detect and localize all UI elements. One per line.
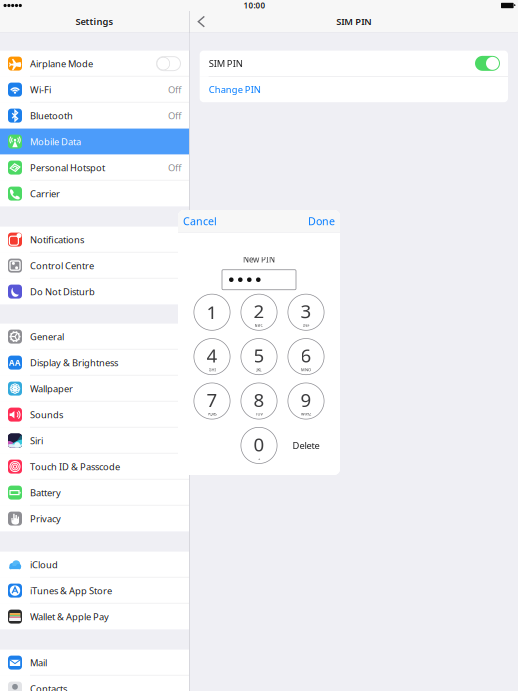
button[interactable]: Cancel bbox=[178, 209, 222, 233]
staticText: Off bbox=[168, 161, 181, 174]
button[interactable]: Change PIN bbox=[200, 77, 508, 102]
button[interactable]: Wallpaper bbox=[0, 376, 189, 402]
button[interactable]: Control Centre bbox=[0, 253, 189, 279]
staticText: New PIN bbox=[243, 254, 275, 265]
staticText: Carrier bbox=[30, 187, 60, 200]
staticText: Off bbox=[168, 109, 181, 122]
button[interactable]: Notifications bbox=[0, 227, 189, 253]
staticText: Bluetooth bbox=[30, 109, 73, 122]
staticText: Sounds bbox=[30, 408, 63, 421]
staticText: AA bbox=[9, 357, 21, 368]
button[interactable]: iTunes & App Store bbox=[0, 578, 189, 604]
staticText: Done bbox=[308, 214, 335, 228]
staticText: iTunes & App Store bbox=[30, 584, 112, 597]
staticText: Mail bbox=[30, 656, 47, 669]
button[interactable]: Contacts bbox=[0, 676, 189, 691]
button[interactable]: 0 bbox=[240, 427, 277, 464]
button[interactable]: 2 bbox=[240, 294, 277, 331]
staticText: Change PIN bbox=[209, 83, 261, 96]
staticText: Wallpaper bbox=[30, 382, 73, 395]
button[interactable]: Privacy bbox=[0, 506, 189, 532]
staticText: SIM PIN bbox=[209, 57, 243, 70]
staticText: JKL bbox=[256, 367, 261, 372]
button[interactable]: SIM PIN bbox=[200, 51, 508, 76]
button[interactable]: Delete bbox=[287, 427, 324, 464]
staticText: 4 bbox=[206, 343, 217, 368]
staticText: 5 bbox=[253, 343, 264, 368]
staticText: iCloud bbox=[30, 558, 58, 571]
staticText: 0 bbox=[253, 432, 264, 457]
button[interactable]: General bbox=[0, 324, 189, 350]
button[interactable]: Bluetooth bbox=[0, 103, 189, 129]
button[interactable]: 8 bbox=[240, 382, 277, 419]
staticText: Mobile Data bbox=[30, 135, 81, 148]
staticText: Privacy bbox=[30, 512, 61, 525]
staticText: 6 bbox=[300, 343, 311, 368]
button[interactable]: Airplane Mode bbox=[0, 51, 189, 77]
staticText: Siri bbox=[30, 434, 43, 447]
button[interactable]: 3 bbox=[287, 294, 324, 331]
staticText: ABC bbox=[254, 323, 263, 328]
staticText: Settings bbox=[75, 15, 113, 28]
button[interactable]: Carrier bbox=[0, 181, 189, 207]
staticText: Cancel bbox=[183, 214, 217, 228]
button[interactable]: Sounds bbox=[0, 402, 189, 428]
button[interactable]: Mail bbox=[0, 650, 189, 676]
staticText: 3 bbox=[300, 299, 311, 323]
button[interactable]: Back bbox=[190, 11, 215, 32]
staticText: Delete bbox=[292, 439, 319, 452]
staticText: 8 bbox=[253, 387, 264, 412]
staticText: General bbox=[30, 330, 64, 343]
staticText: 10:00 bbox=[243, 0, 265, 11]
staticText: 9 bbox=[300, 387, 311, 412]
button[interactable]: 9 bbox=[287, 382, 324, 419]
staticText: 1 bbox=[206, 300, 217, 325]
staticText: DEF bbox=[302, 323, 309, 328]
button[interactable]: Siri bbox=[0, 428, 189, 454]
staticText: WXYZ bbox=[301, 411, 311, 417]
button[interactable]: 1 bbox=[193, 294, 230, 331]
button[interactable]: AA bbox=[0, 350, 189, 376]
staticText: Wallet & Apple Pay bbox=[30, 610, 109, 623]
staticText: Personal Hotspot bbox=[30, 161, 105, 174]
staticText: Battery bbox=[30, 486, 61, 499]
staticText: 7 bbox=[206, 387, 217, 412]
staticText: 2 bbox=[253, 299, 264, 323]
staticText: SIM PIN bbox=[336, 15, 371, 28]
staticText: Touch ID & Passcode bbox=[30, 460, 120, 473]
button[interactable]: Battery bbox=[0, 480, 189, 506]
staticText: Off bbox=[168, 83, 181, 96]
staticText: Contacts bbox=[30, 682, 67, 691]
button[interactable]: Mobile Data bbox=[0, 129, 189, 155]
button[interactable]: Personal Hotspot bbox=[0, 155, 189, 181]
staticText: Notifications bbox=[30, 233, 84, 246]
button[interactable]: 7 bbox=[193, 382, 230, 419]
staticText: TUV bbox=[255, 411, 262, 417]
staticText: Wi-Fi bbox=[30, 83, 51, 96]
staticText: GHI bbox=[208, 367, 215, 372]
button[interactable]: Done bbox=[303, 209, 340, 233]
staticText: Display & Brightness bbox=[30, 356, 118, 369]
button[interactable]: 4 bbox=[193, 338, 230, 375]
button[interactable]: Wallet & Apple Pay bbox=[0, 604, 189, 630]
staticText: PQRS bbox=[207, 411, 216, 417]
staticText: Do Not Disturb bbox=[30, 285, 95, 298]
staticText: + bbox=[258, 456, 260, 461]
button[interactable]: 6 bbox=[287, 338, 324, 375]
staticText: Control Centre bbox=[30, 259, 94, 272]
button[interactable]: 5 bbox=[240, 338, 277, 375]
button[interactable]: Touch ID & Passcode bbox=[0, 454, 189, 480]
button[interactable]: Wi-Fi bbox=[0, 77, 189, 103]
button[interactable]: iCloud bbox=[0, 552, 189, 578]
button[interactable]: Do Not Disturb bbox=[0, 279, 189, 305]
staticText: Airplane Mode bbox=[30, 57, 93, 70]
staticText: MNO bbox=[301, 367, 311, 372]
